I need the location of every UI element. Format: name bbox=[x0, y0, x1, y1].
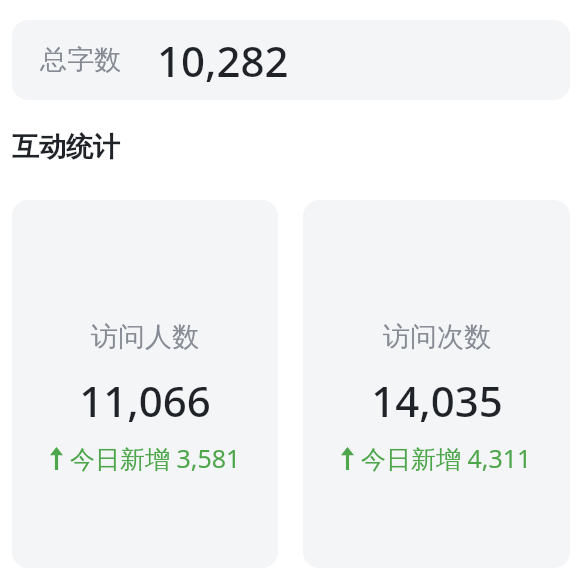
staticText: 访问次数 bbox=[383, 320, 491, 354]
staticText: 14,035 bbox=[371, 372, 503, 429]
staticText: 今日新增 3,581 bbox=[70, 441, 241, 475]
staticText: 11,066 bbox=[79, 372, 211, 429]
button[interactable]: 访问人数 bbox=[12, 200, 278, 568]
staticText: 10,282 bbox=[157, 32, 289, 89]
staticText: 访问人数 bbox=[91, 320, 199, 354]
button[interactable]: 访问次数 bbox=[303, 200, 570, 568]
staticText: 总字数 bbox=[40, 43, 121, 77]
staticText: 今日新增 4,311 bbox=[361, 441, 532, 475]
staticText: 互动统计 bbox=[12, 130, 120, 164]
button[interactable]: 总字数 bbox=[12, 20, 570, 100]
